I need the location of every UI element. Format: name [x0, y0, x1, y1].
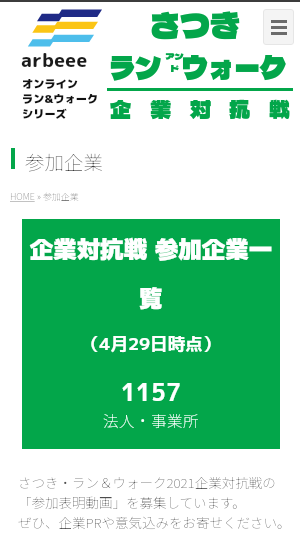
staticText: » 参加企業 — [35, 190, 79, 203]
staticText: さつき — [150, 0, 240, 49]
button[interactable]: HOME — [10, 190, 35, 203]
staticText: アン ド — [165, 50, 184, 74]
staticText: 1157 — [22, 376, 280, 409]
staticText: 戦 — [269, 91, 290, 126]
staticText: 企 — [110, 91, 131, 126]
staticText: 法人・事業所 — [22, 409, 280, 431]
staticText: 業 — [150, 91, 171, 126]
staticText: arbeee — [21, 47, 88, 74]
staticText: さつき・ラン＆ウォーク2021企業対抗戦の 「参加表明動画」を募集しています。 … — [18, 472, 291, 532]
button[interactable]: Menu — [263, 9, 294, 45]
staticText: 企業対抗戦 参加企業一覧 — [26, 233, 276, 314]
staticText: （4月29日時点） — [22, 331, 280, 355]
staticText: 参加企業 — [25, 147, 104, 175]
staticText: 抗 — [229, 91, 250, 126]
staticText: ウォーク — [182, 42, 287, 89]
staticText: 対 — [190, 91, 211, 126]
staticText: ラン — [109, 42, 162, 89]
staticText: オンライン ラン&ウォーク シリーズ — [22, 76, 99, 122]
